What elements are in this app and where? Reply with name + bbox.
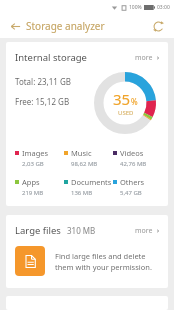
staticText: Others — [120, 177, 145, 187]
button[interactable]: Refresh — [148, 16, 168, 36]
staticText: 35 — [113, 89, 131, 109]
staticText: Free: 15,12 GB — [15, 96, 70, 107]
staticText: 219 MB — [22, 189, 44, 197]
staticText: 42,76 MB — [120, 160, 147, 168]
button[interactable]: Music — [64, 148, 113, 168]
staticText: % — [131, 96, 138, 107]
button[interactable]: Find large files and delete them with yo… — [6, 244, 168, 288]
staticText: Music — [71, 148, 92, 158]
staticText: Large files — [15, 224, 61, 237]
staticText: Videos — [120, 148, 144, 158]
staticText: more — [135, 226, 153, 236]
staticText: 03:00 — [157, 4, 170, 11]
staticText: Images — [22, 148, 49, 158]
staticText: Apps — [22, 177, 40, 187]
staticText: 100% — [129, 4, 142, 11]
button[interactable]: Large files — [6, 215, 168, 244]
button[interactable]: Videos — [113, 148, 162, 168]
staticText: Storage analyzer — [26, 19, 105, 33]
staticText: 98,62 MB — [71, 160, 98, 168]
button[interactable]: Others — [113, 177, 162, 197]
button[interactable]: Apps — [15, 177, 64, 197]
button[interactable]: Back — [5, 16, 25, 36]
staticText: 2,03 GB — [22, 160, 44, 168]
staticText: USED — [118, 109, 134, 117]
staticText: Internal storage — [15, 51, 87, 64]
button[interactable]: Internal storage — [6, 42, 168, 70]
staticText: Total: 23,11 GB — [15, 76, 71, 87]
staticText: Documents — [71, 177, 112, 187]
button[interactable]: Documents — [64, 177, 113, 197]
button[interactable]: Images — [15, 148, 64, 168]
staticText: 310 MB — [67, 225, 96, 236]
staticText: more — [135, 53, 153, 63]
staticText: 136 MB — [71, 189, 93, 197]
staticText: 5,47 GB — [120, 189, 142, 197]
staticText: Find large files and delete them with yo… — [55, 251, 159, 272]
